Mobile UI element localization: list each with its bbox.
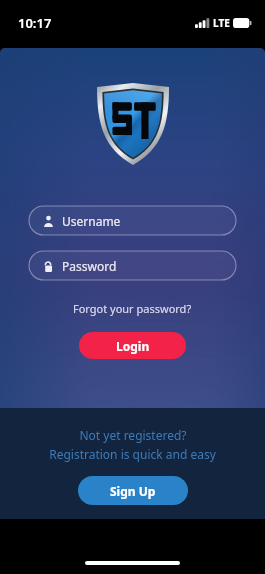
staticText: Login <box>116 338 150 354</box>
other: Home <box>85 561 180 565</box>
button[interactable]: Forgot your password? <box>67 299 198 318</box>
staticText: Registration is quick and easy <box>49 446 216 462</box>
staticText: Sign Up <box>110 483 156 499</box>
button[interactable]: Login <box>79 332 186 359</box>
button[interactable]: Username <box>29 206 236 235</box>
staticText: Forgot your password? <box>73 301 192 316</box>
staticText: LTE <box>213 16 230 30</box>
staticText: Password <box>62 258 117 274</box>
button[interactable]: Sign Up <box>78 476 188 505</box>
staticText: 10:17 <box>18 14 52 32</box>
staticText: Username <box>62 213 121 229</box>
button[interactable]: Password <box>29 251 236 280</box>
staticText: Not yet registered? <box>79 427 187 443</box>
